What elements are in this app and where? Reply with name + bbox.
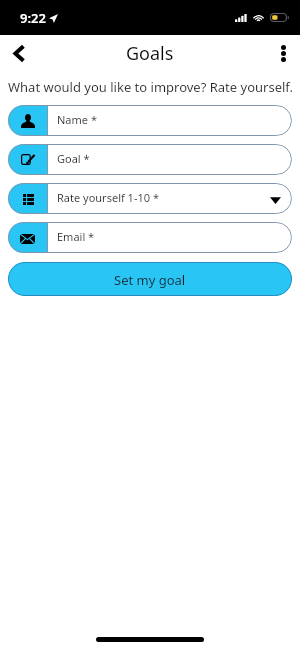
button[interactable]: Rate yourself 1-10 * [8,183,292,214]
button[interactable]: Email * [8,222,292,253]
staticText: Goals [126,41,174,66]
staticText: Email * [57,229,95,244]
staticText: Name * [57,112,97,127]
button[interactable]: Back [0,35,38,71]
staticText: What would you like to improve? Rate you… [8,78,294,96]
button[interactable]: Set my goal [8,262,292,296]
button[interactable]: Goal * [8,144,292,175]
staticText: Goal * [57,151,90,166]
button[interactable]: Name * [8,105,292,136]
staticText: Set my goal [114,271,186,289]
staticText: Rate yourself 1-10 * [57,190,159,205]
staticText: 9:22 [20,9,46,27]
button[interactable]: More options [266,35,300,71]
